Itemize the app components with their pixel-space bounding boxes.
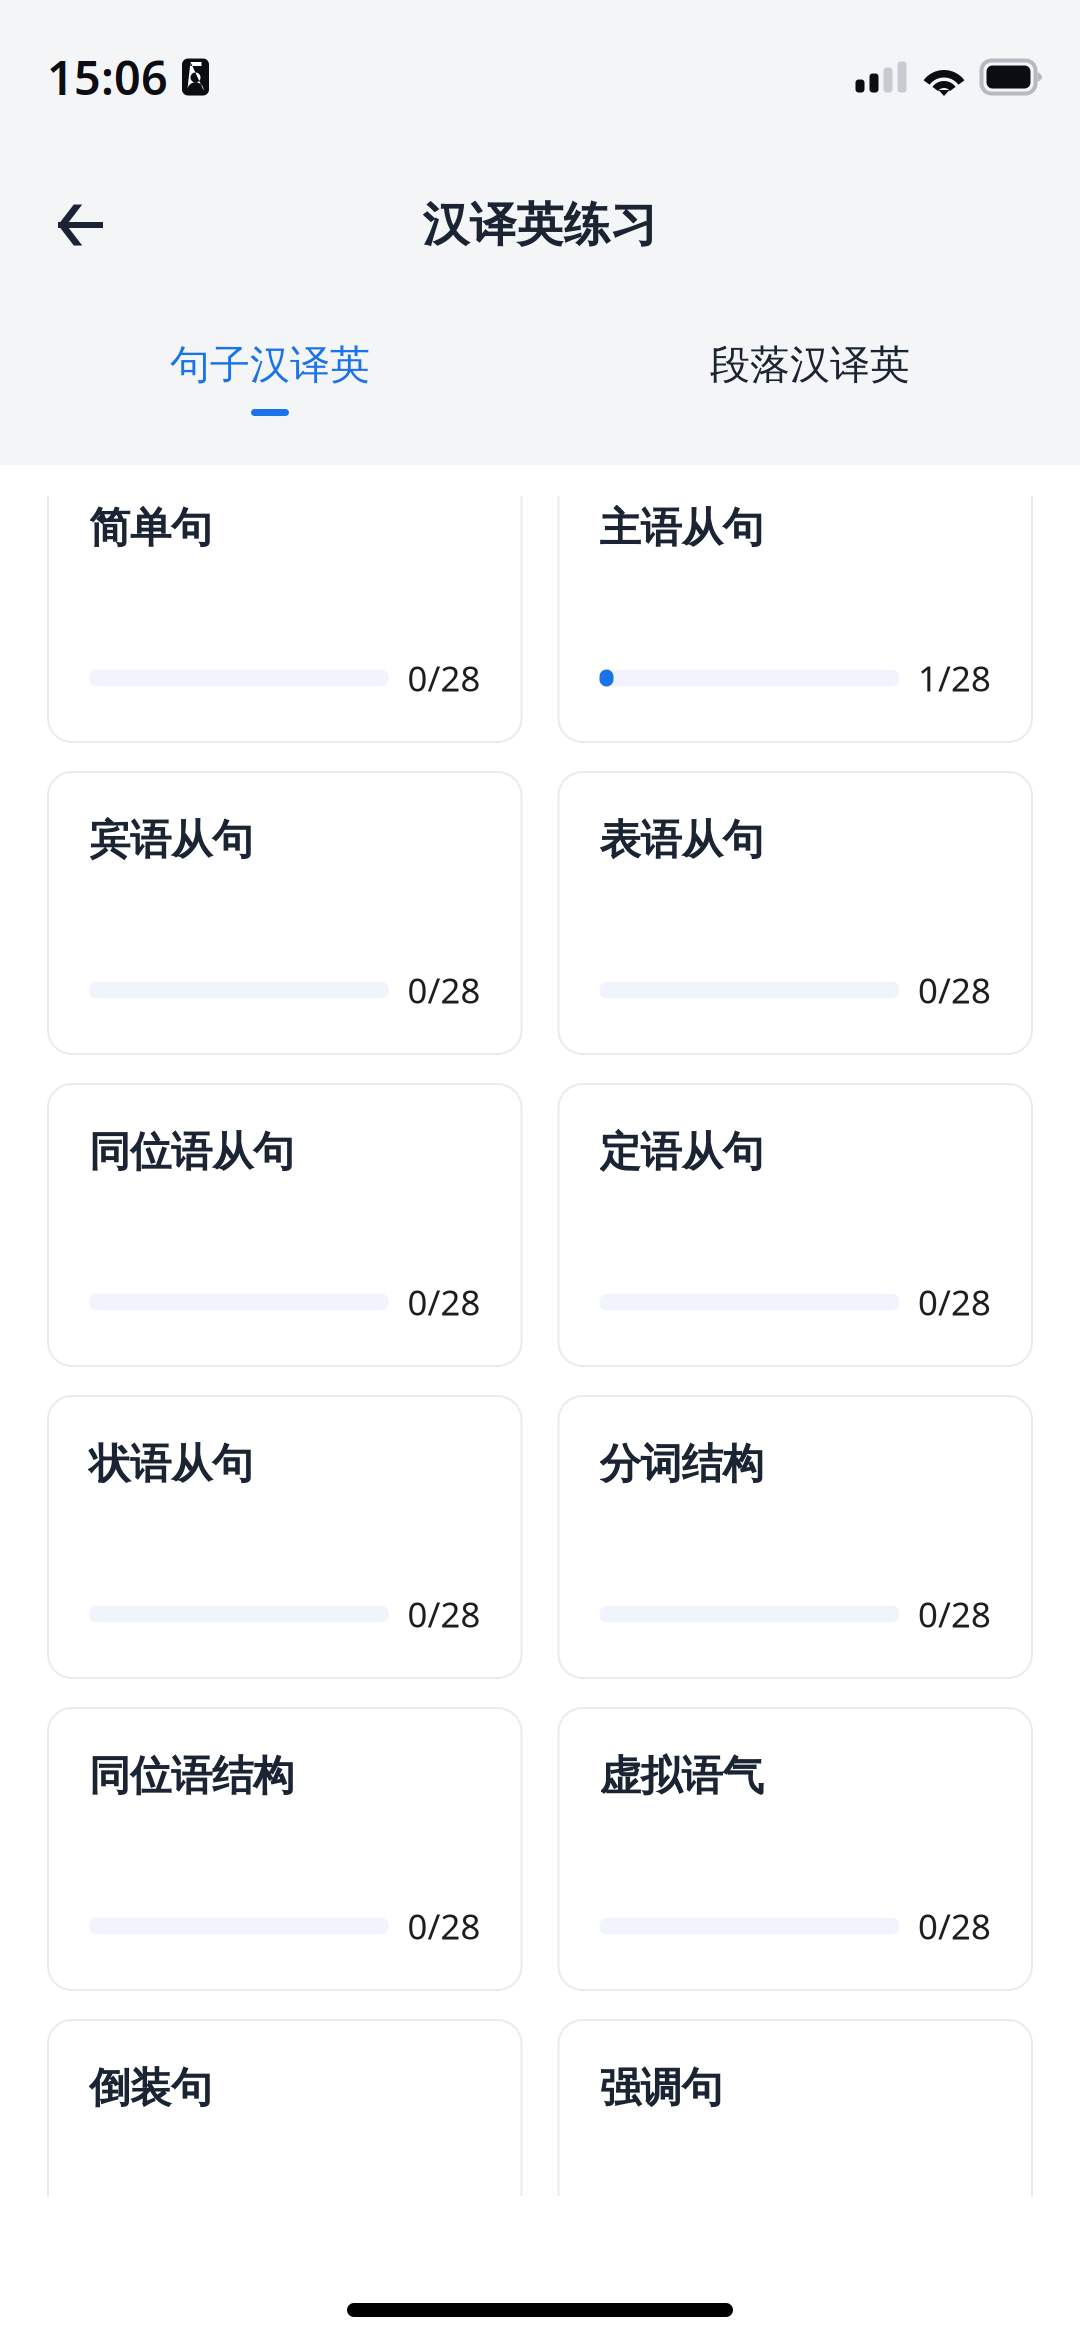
staticText: 0/28 — [407, 1591, 480, 1637]
staticText: 0/28 — [918, 967, 991, 1013]
staticText: 段落汉译英 — [710, 340, 910, 389]
staticText: 15:06 — [47, 46, 168, 108]
staticText: 0/28 — [407, 1279, 480, 1325]
staticText: 0/28 — [407, 1903, 480, 1949]
staticText: 同位语结构 — [89, 1751, 294, 1801]
button[interactable]: 定语从句 — [558, 1084, 1032, 1366]
staticText: 宾语从句 — [89, 815, 253, 865]
staticText: 主语从句 — [599, 503, 763, 553]
staticText: 0/28 — [407, 967, 480, 1013]
staticText: 1/28 — [918, 655, 991, 701]
button[interactable]: 宾语从句 — [48, 772, 521, 1054]
button[interactable]: 倒装句 — [48, 2020, 521, 2302]
button[interactable]: 句子汉译英 — [0, 296, 540, 465]
staticText: 虚拟语气 — [599, 1751, 763, 1801]
staticText: 定语从句 — [599, 1127, 763, 1177]
staticText: 0/28 — [918, 1903, 991, 1949]
button[interactable]: 段落汉译英 — [540, 296, 1080, 465]
button[interactable]: 同位语结构 — [48, 1708, 521, 1990]
staticText: 表语从句 — [599, 815, 763, 865]
button[interactable]: 同位语从句 — [48, 1084, 521, 1366]
staticText: 强调句 — [599, 2063, 722, 2113]
button[interactable]: Back — [28, 173, 132, 277]
staticText: 倒装句 — [89, 2063, 212, 2113]
staticText: 状语从句 — [89, 1439, 253, 1489]
button[interactable]: 分词结构 — [558, 1396, 1032, 1678]
staticText: 0/28 — [407, 655, 480, 701]
button[interactable]: 虚拟语气 — [558, 1708, 1032, 1990]
staticText: 同位语从句 — [89, 1127, 294, 1177]
staticText: 句子汉译英 — [170, 340, 370, 389]
staticText: 分词结构 — [599, 1439, 763, 1489]
staticText: 简单句 — [89, 503, 212, 553]
staticText: 汉译英练习 — [422, 196, 657, 254]
staticText: 0/28 — [918, 1591, 991, 1637]
staticText: 0/28 — [918, 1279, 991, 1325]
button[interactable]: 主语从句 — [558, 460, 1032, 742]
button[interactable]: 表语从句 — [558, 772, 1032, 1054]
button[interactable]: 简单句 — [48, 460, 521, 742]
button[interactable]: 状语从句 — [48, 1396, 521, 1678]
button[interactable]: 强调句 — [558, 2020, 1032, 2302]
